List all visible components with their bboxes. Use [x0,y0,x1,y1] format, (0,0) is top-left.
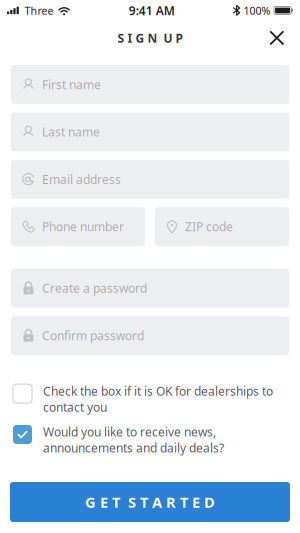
staticText: G E T S T A R T E D [85,492,215,512]
button[interactable]: First name [11,65,289,104]
button[interactable]: Last name [11,112,289,151]
staticText: Last name [42,124,100,140]
button[interactable]: Check the box if it is OK for dealership… [0,383,300,415]
staticText: Email address [42,171,121,187]
button[interactable]: Phone number [11,207,145,246]
button[interactable]: Confirm password [11,316,289,355]
button[interactable]: Close [260,21,294,55]
staticText: Confirm password [42,328,144,343]
staticText: Check the box if it is OK for dealership… [43,383,273,415]
staticText: Create a password [42,280,147,296]
staticText: S I G N U P [117,30,182,46]
staticText: Would you like to receive news, announce… [43,424,224,456]
staticText: 100% [244,3,271,18]
button[interactable]: ZIP code [155,207,289,246]
button[interactable]: Would you like to receive news, announce… [0,424,300,456]
staticText: ZIP code [185,219,233,235]
button[interactable]: G E T S T A R T E D [10,482,290,522]
staticText: Phone number [42,219,124,235]
staticText: First name [42,76,101,92]
button[interactable]: Create a password [11,269,289,308]
staticText: 9:41 AM [129,2,175,18]
staticText: Three [24,3,53,18]
button[interactable]: Email address [11,160,289,199]
